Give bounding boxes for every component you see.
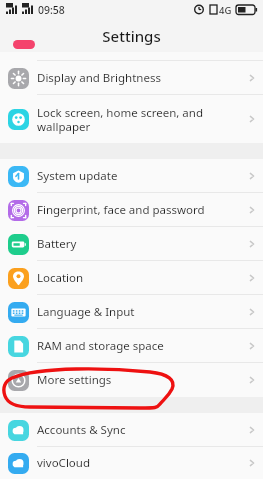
button[interactable]: Accounts & Sync [0,413,263,447]
staticText: Accounts & Sync [37,422,235,438]
staticText: More settings [37,372,235,388]
staticText: System update [37,168,235,184]
staticText: vivoCloud [37,455,235,471]
button[interactable]: Language & Input [0,295,263,329]
button[interactable]: Fingerprint, face and password [0,193,263,227]
button[interactable]: Display and Brightness [0,61,263,95]
staticText: Lock screen, home screen, and wallpaper [37,105,235,134]
staticText: 4G [219,4,232,17]
staticText: 09:58 [38,3,65,17]
button[interactable]: Lock screen, home screen, and wallpaper [0,95,263,143]
button[interactable]: vivoCloud [0,447,263,479]
staticText: RAM and storage space [37,338,235,354]
button[interactable]: RAM and storage space [0,329,263,363]
staticText: Location [37,270,235,286]
button[interactable]: System update [0,159,263,193]
staticText: Battery [37,236,235,252]
staticText: Display and Brightness [37,70,235,86]
staticText: Language & Input [37,304,235,320]
button[interactable]: Battery [0,227,263,261]
staticText: Settings [102,26,161,46]
staticText: Fingerprint, face and password [37,202,235,218]
button[interactable]: More settings [0,363,263,397]
button[interactable]: Location [0,261,263,295]
